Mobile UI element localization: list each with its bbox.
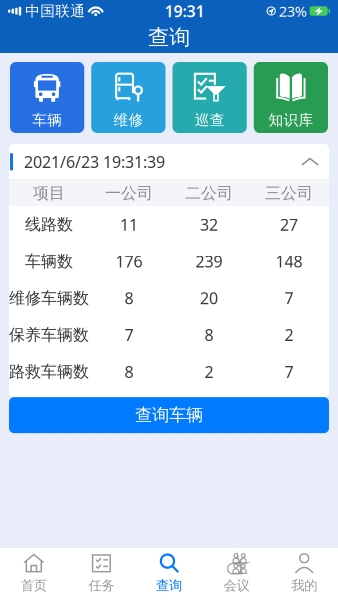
staticText: 239 [195, 251, 222, 272]
staticText: 查询车辆 [135, 404, 203, 426]
button[interactable]: 2021/6/23 19:31:39 [9, 144, 329, 179]
staticText: 8 [124, 361, 133, 382]
staticText: 中国联通 [25, 2, 85, 20]
button[interactable]: 巡查 [172, 62, 247, 133]
staticText: 巡查 [195, 111, 225, 129]
staticText: 查询 [156, 577, 182, 594]
staticText: 2 [284, 324, 293, 345]
staticText: 知识库 [268, 111, 313, 129]
staticText: 保养车辆数 [9, 325, 89, 345]
staticText: 32 [200, 214, 218, 235]
staticText: 维修车辆数 [9, 288, 89, 308]
staticText: 8 [124, 287, 133, 309]
staticText: 7 [284, 287, 293, 309]
staticText: 会议 [224, 577, 250, 594]
button[interactable]: 车辆 [10, 62, 84, 133]
staticText: 7 [124, 324, 133, 345]
button[interactable]: 查询车辆 [9, 397, 329, 433]
staticText: 线路数 [25, 215, 73, 234]
staticText: 车辆数 [25, 251, 73, 271]
staticText: 首页 [21, 577, 47, 594]
staticText: 维修 [113, 111, 143, 129]
staticText: 二公司 [185, 183, 233, 203]
staticText: 27 [280, 214, 298, 235]
staticText: 2021/6/23 19:31:39 [24, 151, 165, 172]
staticText: 20 [200, 287, 218, 309]
button[interactable]: 查询 [135, 548, 203, 600]
staticText: 任务 [88, 577, 114, 594]
staticText: 路救车辆数 [9, 362, 89, 382]
button[interactable]: 知识库 [254, 62, 328, 133]
staticText: 19:31 [164, 0, 204, 22]
staticText: 查询 [148, 24, 190, 51]
staticText: 7 [284, 361, 293, 382]
button[interactable]: 会议 [203, 548, 270, 600]
staticText: 2 [204, 361, 213, 382]
button[interactable]: 任务 [68, 548, 135, 600]
staticText: 23% [279, 1, 307, 21]
staticText: 我的 [291, 577, 317, 594]
staticText: 176 [115, 251, 142, 272]
button[interactable]: 首页 [0, 548, 68, 600]
staticText: 8 [204, 324, 213, 345]
staticText: 148 [275, 251, 302, 272]
staticText: 三公司 [265, 183, 313, 203]
staticText: 项目 [33, 183, 65, 203]
staticText: 11 [120, 214, 138, 235]
button[interactable]: 维修 [91, 62, 165, 133]
staticText: 车辆 [32, 111, 62, 129]
staticText: 一公司 [105, 183, 153, 203]
button[interactable]: 我的 [270, 548, 338, 600]
